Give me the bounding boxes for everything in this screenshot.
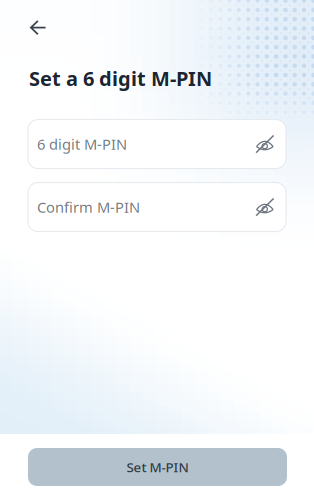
staticText: Set a 6 digit M-PIN — [29, 65, 212, 92]
staticText: Confirm M-PIN — [37, 197, 140, 217]
button[interactable]: Back — [0, 0, 61, 50]
button[interactable]: Show 6 digit M-PIN — [255, 135, 275, 154]
button[interactable]: Show Confirm M-PIN — [255, 198, 275, 217]
staticText: Set M-PIN — [126, 458, 188, 476]
button[interactable]: Set M-PIN — [28, 448, 287, 486]
staticText: 6 digit M-PIN — [37, 134, 127, 154]
